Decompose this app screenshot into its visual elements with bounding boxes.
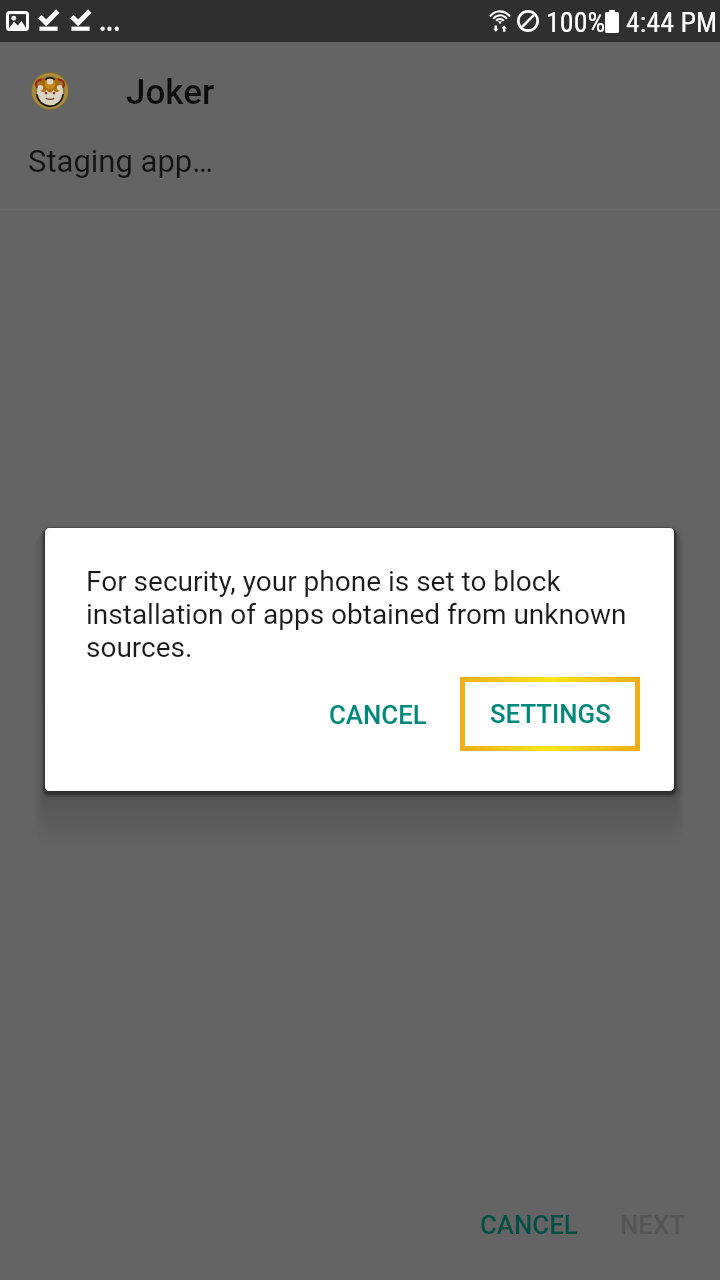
- button[interactable]: NEXT: [602, 1194, 703, 1256]
- button[interactable]: CANCEL: [462, 1194, 596, 1256]
- button[interactable]: SETTINGS: [460, 677, 640, 751]
- button[interactable]: CANCEL: [317, 687, 439, 743]
- staticText: Joker: [126, 72, 215, 113]
- staticText: For security, your phone is set to block…: [86, 565, 631, 664]
- staticText: CANCEL: [480, 1210, 578, 1240]
- staticText: Staging app…: [28, 143, 213, 179]
- staticText: 100%: [546, 6, 606, 39]
- staticText: 4:44 PM: [626, 6, 718, 39]
- staticText: CANCEL: [329, 700, 427, 730]
- staticText: NEXT: [620, 1210, 685, 1240]
- staticText: SETTINGS: [490, 699, 611, 729]
